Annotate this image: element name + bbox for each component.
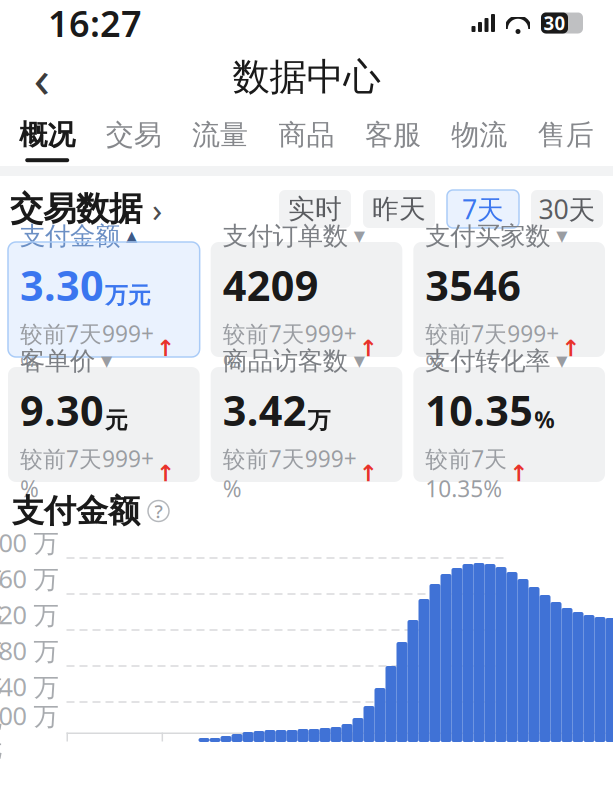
staticText: ▲ [126, 228, 137, 244]
staticText: 元 [105, 407, 128, 434]
staticText: 昨天 [372, 193, 426, 225]
staticText: 较前7天999+% [223, 443, 357, 504]
staticText: 30 [543, 11, 565, 35]
staticText: 1.20 万元 [0, 598, 58, 662]
staticText: 4209 [223, 257, 319, 312]
staticText: 物流 [451, 118, 507, 152]
button[interactable]: 商品访客数 [211, 367, 402, 482]
staticText: 交易数据 [10, 188, 142, 229]
button[interactable]: 支付买家数 [413, 242, 605, 357]
staticText: 30天 [538, 191, 595, 227]
staticText: 客服 [365, 118, 421, 152]
staticText: 流量 [192, 118, 248, 152]
staticText: 较前7天999+% [223, 318, 357, 379]
button[interactable]: 商品 [263, 108, 350, 166]
staticText: ? [154, 499, 162, 523]
staticText: 商品 [278, 118, 334, 152]
staticText: 支付买家数 [425, 220, 550, 251]
staticText: ▼ [556, 353, 567, 369]
staticText: 商品访客数 [223, 345, 348, 376]
button[interactable]: 客服 [350, 108, 436, 166]
staticText: ▼ [354, 228, 365, 244]
button[interactable]: 实时 [279, 190, 351, 228]
button[interactable]: 昨天 [363, 190, 435, 228]
button[interactable]: 交易 [90, 108, 177, 166]
button[interactable]: 概况 [4, 108, 90, 166]
staticText: 万元 [105, 282, 151, 309]
button[interactable]: 支付转化率 [413, 367, 605, 482]
staticText: 3.42 [223, 382, 307, 437]
staticText: 支付金额 [12, 491, 140, 531]
button[interactable]: 流量 [177, 108, 263, 166]
staticText: ‹ [33, 42, 50, 112]
button[interactable]: 7天 [447, 190, 519, 228]
staticText: 实时 [288, 193, 342, 225]
button[interactable]: 支付订单数 [211, 242, 402, 357]
staticText: 万 [308, 407, 331, 434]
staticText: 0.00 万元 [0, 699, 58, 763]
button[interactable]: 售后 [523, 108, 609, 166]
staticText: ↑ [359, 336, 378, 361]
staticText: 0.80 万元 [0, 634, 58, 698]
staticText: 7天 [462, 191, 504, 227]
staticText: 售后 [538, 118, 594, 152]
staticText: ↑ [359, 461, 378, 486]
staticText: 较前7天999+% [20, 318, 154, 379]
staticText: 9.30 [20, 382, 104, 437]
staticText: 交易 [106, 118, 162, 152]
staticText: 16:27 [48, 0, 142, 47]
staticText: 客单价 [20, 345, 95, 376]
staticText: ↑ [561, 336, 580, 361]
staticText: 支付转化率 [425, 345, 550, 376]
button[interactable]: Back [14, 49, 70, 105]
button[interactable]: 客单价 [8, 367, 200, 482]
staticText: % [534, 404, 554, 434]
button[interactable]: About 支付金额 [148, 500, 169, 521]
staticText: ▼ [556, 228, 567, 244]
button[interactable]: 交易数据 [10, 187, 162, 231]
staticText: 数据中心 [232, 54, 380, 100]
staticText: 3.30 [20, 257, 104, 312]
staticText: › [152, 187, 162, 231]
staticText: ↑ [509, 461, 528, 486]
button[interactable]: 30天 [531, 190, 603, 228]
staticText: ↑ [156, 461, 175, 486]
staticText: 较前7天10.35% [425, 443, 507, 504]
staticText: ▼ [101, 353, 112, 369]
staticText: 1.60 万元 [0, 562, 58, 626]
staticText: 0.40 万元 [0, 670, 58, 734]
staticText: 3546 [425, 257, 521, 312]
staticText: 概况 [19, 118, 75, 152]
staticText: 10.35 [425, 382, 533, 437]
staticText: ↑ [156, 336, 175, 361]
staticText: 2.00 万元 [0, 526, 58, 590]
staticText: 支付订单数 [223, 220, 348, 251]
button[interactable]: 物流 [436, 108, 522, 166]
staticText: ▼ [354, 353, 365, 369]
staticText: 支付金额 [20, 220, 120, 251]
button[interactable]: 支付金额 [8, 242, 200, 357]
staticText: 较前7天999+% [425, 318, 559, 379]
staticText: 较前7天999+% [20, 443, 154, 504]
